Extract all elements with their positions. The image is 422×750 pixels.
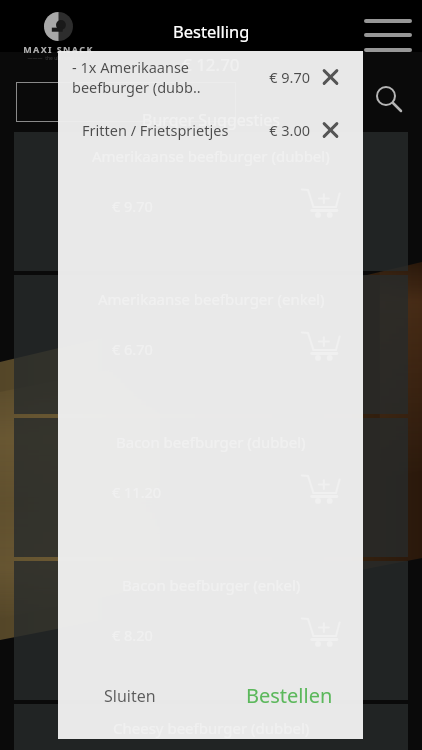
button[interactable]: Bacon beefburger (enkel) <box>14 561 408 700</box>
staticText: MAXI SNACK <box>23 43 93 55</box>
button[interactable]: Search field <box>16 82 236 122</box>
staticText: Bestellen <box>246 682 333 709</box>
button[interactable]: Bacon beefburger (dubbel) <box>14 418 408 557</box>
staticText: Bestelling <box>173 20 250 42</box>
button[interactable]: Amerikaanse beefburger (enkel) <box>14 275 408 414</box>
staticText: ——— the ultimate snack <box>23 55 93 62</box>
staticText: Burger Suggesties <box>142 109 281 131</box>
staticText: Fritten / Frietsprietjes <box>82 120 229 140</box>
button[interactable]: Search <box>374 84 408 118</box>
button[interactable]: Amerikaanse beefburger (dubbel) <box>14 132 408 271</box>
staticText: € 12.70 <box>182 53 240 76</box>
button[interactable]: Sluiten <box>104 685 156 707</box>
staticText: € 9.70 <box>254 67 310 87</box>
staticText: - 1x Amerikaanse beefburger (dubb.. <box>72 57 201 97</box>
button[interactable]: Remove item <box>314 59 350 95</box>
button[interactable]: Bestellen <box>246 682 333 709</box>
button[interactable]: Menu <box>364 12 412 52</box>
button[interactable]: Remove item <box>314 112 350 148</box>
button[interactable]: Cheesy beefburger (dubbel) <box>14 704 408 750</box>
staticText: Sluiten <box>104 685 156 707</box>
button[interactable]: Maxi Snack home <box>23 0 93 52</box>
staticText: € 3.00 <box>254 120 310 140</box>
